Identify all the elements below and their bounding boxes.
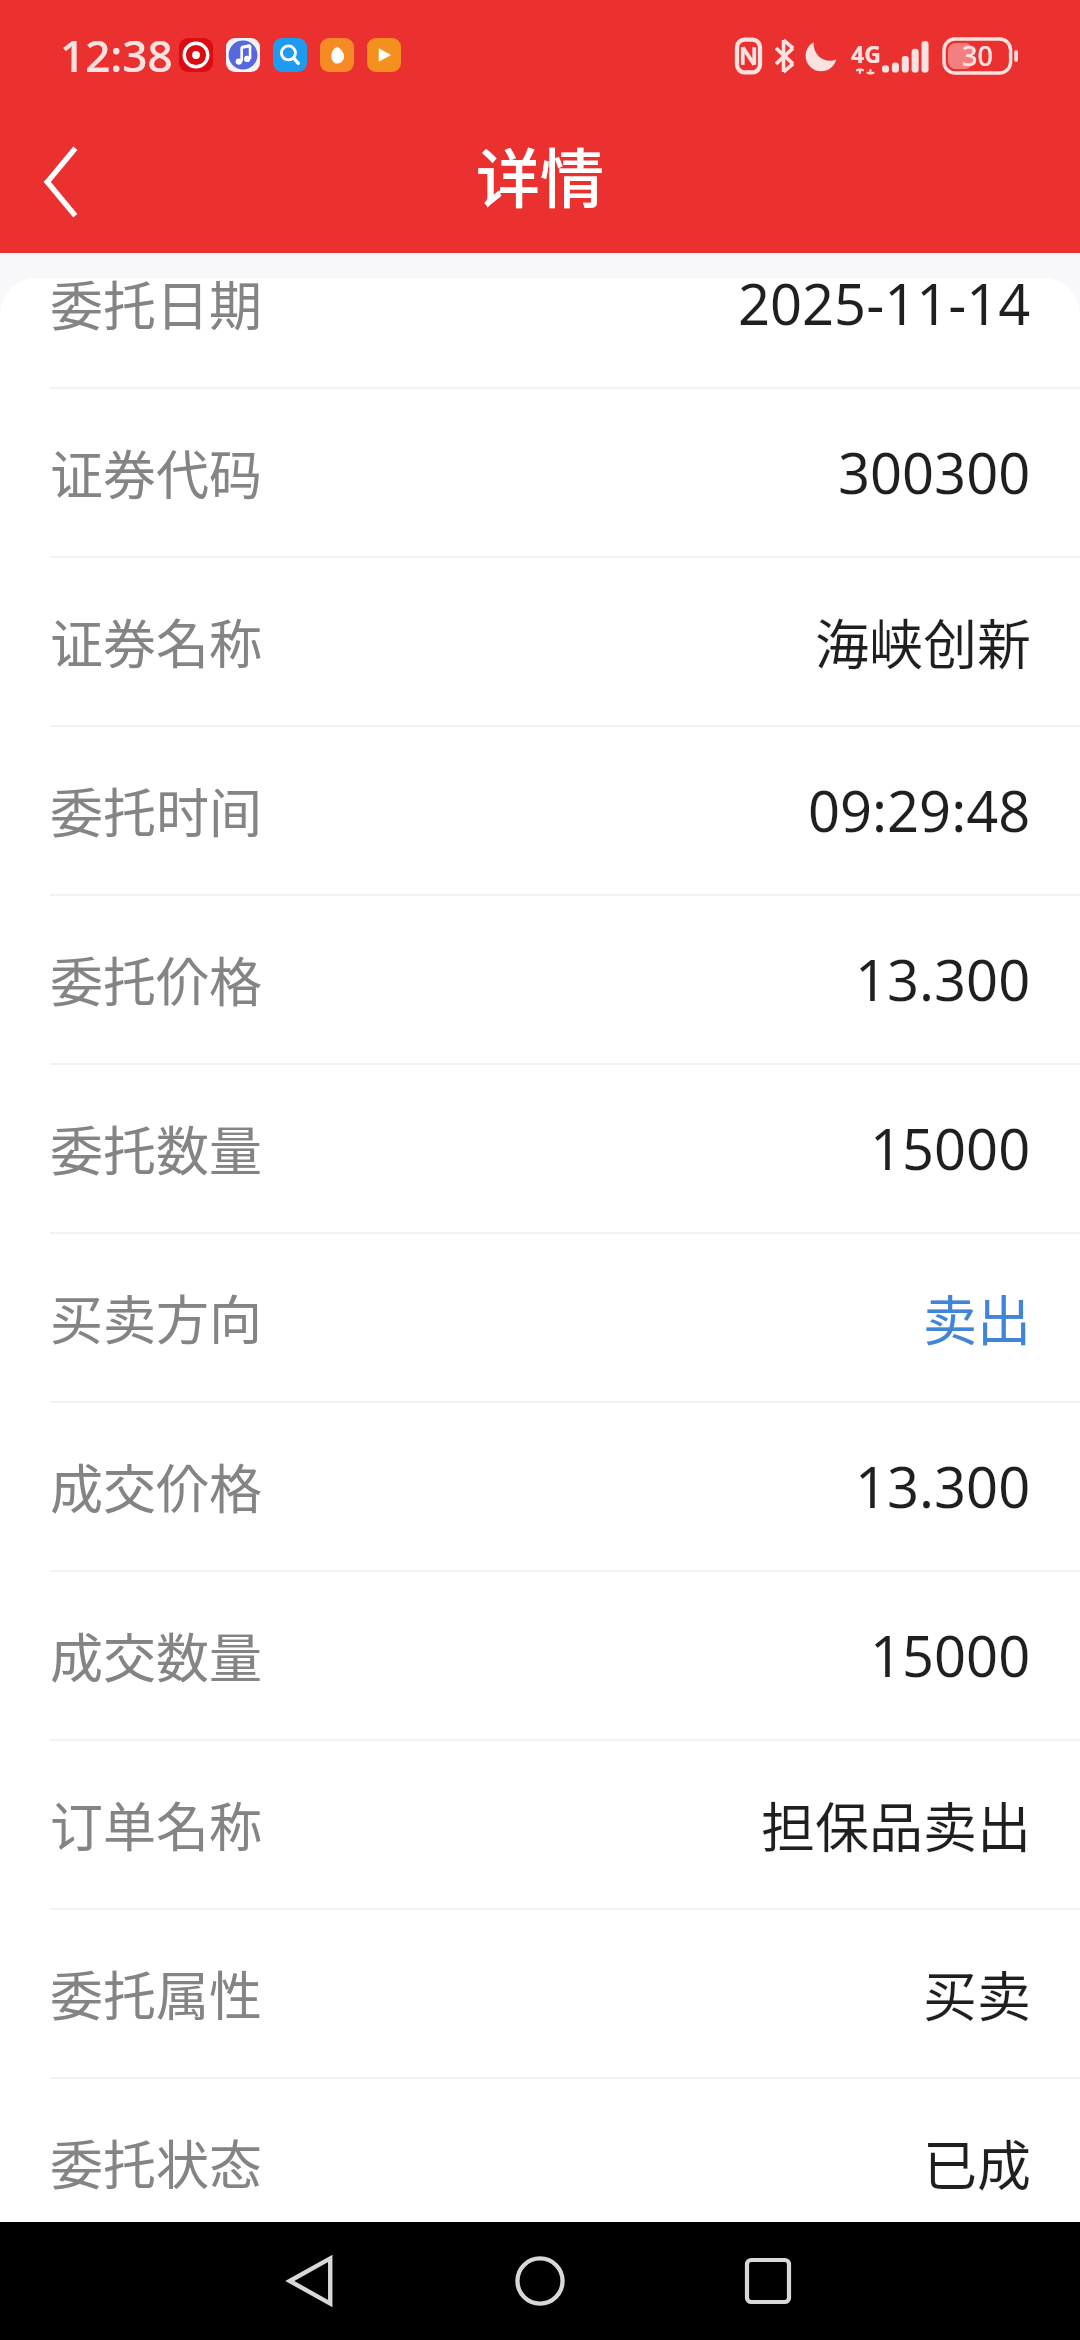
staticText: 买卖方向	[50, 1279, 262, 1356]
button[interactable]: 成交数量	[0, 1572, 1080, 1739]
button[interactable]: Recents	[713, 2226, 823, 2336]
staticText: 13.300	[855, 1448, 1031, 1524]
staticText: 卖出	[923, 1278, 1031, 1356]
staticText: 12:38	[60, 25, 173, 85]
button[interactable]: 委托价格	[0, 896, 1080, 1063]
staticText: 海峡创新	[815, 602, 1031, 680]
staticText: 证券名称	[50, 603, 262, 680]
staticText: 15000	[870, 1110, 1031, 1186]
staticText: 证券代码	[50, 434, 262, 511]
staticText: 详情	[476, 128, 604, 221]
button[interactable]: 委托数量	[0, 1065, 1080, 1232]
button[interactable]: 证券代码	[0, 389, 1080, 556]
staticText: 300300	[838, 434, 1031, 510]
button[interactable]: 委托时间	[0, 727, 1080, 894]
staticText: 担保品卖出	[761, 1785, 1031, 1863]
staticText: 委托时间	[50, 772, 262, 849]
staticText: 成交数量	[50, 1617, 262, 1694]
button[interactable]: 证券名称	[0, 558, 1080, 725]
button[interactable]: 买卖方向	[0, 1234, 1080, 1401]
button[interactable]: 订单名称	[0, 1741, 1080, 1908]
staticText: 委托属性	[50, 1955, 262, 2032]
staticText: 成交价格	[50, 1448, 262, 1525]
staticText: 委托状态	[50, 2124, 262, 2201]
button[interactable]: 委托日期	[0, 278, 1080, 387]
staticText: 委托数量	[50, 1110, 262, 1187]
staticText: 4G	[851, 38, 881, 69]
button[interactable]: 委托属性	[0, 1910, 1080, 2077]
staticText: 已成	[923, 2123, 1031, 2201]
other: NFC	[736, 39, 761, 73]
button[interactable]: 委托状态	[0, 2079, 1080, 2222]
staticText: 2025-11-14	[738, 278, 1031, 341]
button[interactable]: Back	[255, 2226, 365, 2336]
staticText: 15000	[870, 1617, 1031, 1693]
button[interactable]: Home	[485, 2226, 595, 2336]
staticText: 买卖	[923, 1954, 1031, 2032]
button[interactable]: 成交价格	[0, 1403, 1080, 1570]
staticText: 委托日期	[50, 278, 262, 342]
staticText: 13.300	[855, 941, 1031, 1017]
staticText: 委托价格	[50, 941, 262, 1018]
staticText: 09:29:48	[808, 772, 1031, 848]
button[interactable]: Back	[5, 127, 115, 237]
staticText: 30	[962, 37, 993, 74]
staticText: 订单名称	[50, 1786, 262, 1863]
